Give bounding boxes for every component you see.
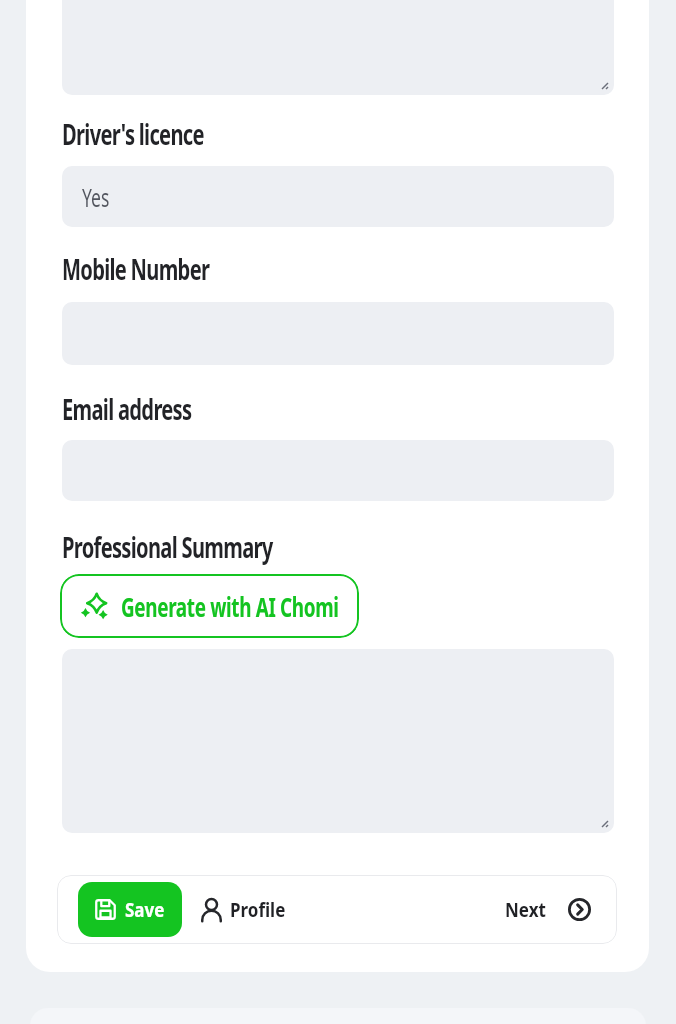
button[interactable]: Generate with AI Chomi xyxy=(60,574,359,638)
button[interactable]: Profile xyxy=(199,896,286,923)
staticText: Mobile Number xyxy=(62,250,210,288)
staticText: Save xyxy=(125,896,165,923)
button[interactable]: Yes xyxy=(62,166,614,227)
staticText: Profile xyxy=(230,896,286,923)
staticText: Driver's licence xyxy=(62,115,204,153)
staticText: Generate with AI Chomi xyxy=(121,588,339,625)
staticText: Next xyxy=(505,896,547,923)
staticText: Professional Summary xyxy=(62,528,273,566)
button[interactable]: Save xyxy=(78,882,182,937)
staticText: Yes xyxy=(82,180,109,214)
button[interactable]: Next xyxy=(505,896,591,923)
staticText: Email address xyxy=(62,390,192,428)
